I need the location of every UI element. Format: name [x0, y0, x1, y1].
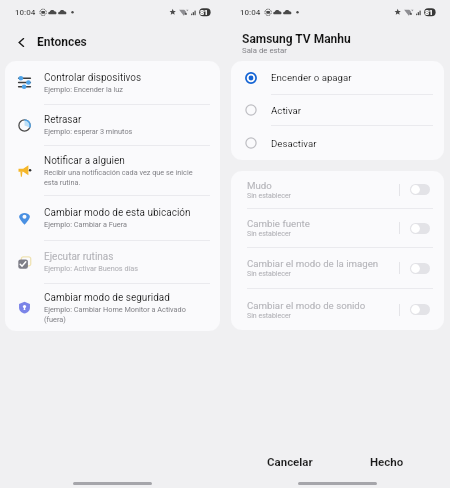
button[interactable]: Mudo: [410, 184, 430, 195]
staticText: Ejemplo: Cambiar Home Monitor a Activado…: [44, 305, 194, 323]
staticText: Samsung TV Manhu: [242, 32, 351, 46]
button[interactable]: Cancelar: [250, 448, 329, 474]
staticText: Entonces: [37, 35, 87, 49]
staticText: Sala de estar: [242, 46, 287, 55]
button[interactable]: Mudo: [231, 171, 444, 208]
staticText: Notificar a alguien: [44, 155, 125, 167]
button[interactable]: Ejecutar rutinas: [5, 241, 220, 283]
staticText: Cancelar: [267, 455, 313, 468]
staticText: Activar: [271, 105, 302, 116]
staticText: 10:04: [240, 8, 261, 17]
button[interactable]: Cambiar modo de esta ubicación: [5, 196, 220, 240]
staticText: Cambie fuente: [247, 218, 310, 229]
staticText: Cambiar el modo de la imagen: [247, 258, 379, 269]
staticText: Ejemplo: esperar 3 minutos: [44, 127, 133, 136]
button[interactable]: Hecho: [347, 448, 426, 474]
button[interactable]: Cambie fuente: [231, 209, 444, 247]
button[interactable]: Cambiar el modo de la imagen: [231, 248, 444, 288]
staticText: Ejemplo: Activar Buenos días: [44, 264, 139, 273]
staticText: Ejemplo: Encender la luz: [44, 85, 123, 94]
staticText: Encender o apagar: [271, 72, 352, 83]
staticText: Cambiar modo de seguridad: [44, 292, 170, 304]
button[interactable]: Notificar a alguien: [5, 146, 220, 195]
staticText: Retrasar: [44, 114, 82, 126]
staticText: Desactivar: [271, 138, 317, 149]
staticText: Mudo: [247, 180, 272, 191]
button[interactable]: Desactivar: [231, 126, 444, 160]
button[interactable]: Encender o apagar: [231, 61, 444, 94]
staticText: Controlar dispositivos: [44, 72, 142, 84]
staticText: 10:04: [15, 8, 36, 17]
staticText: Cambiar modo de esta ubicación: [44, 207, 191, 219]
button[interactable]: Controlar dispositivos: [5, 61, 220, 104]
button[interactable]: Cambiar el modo de sonido: [231, 289, 444, 330]
button[interactable]: Activar: [231, 95, 444, 125]
button[interactable]: Cambie fuente: [410, 223, 430, 234]
staticText: Ejecutar rutinas: [44, 251, 114, 263]
button[interactable]: Retrasar: [5, 105, 220, 145]
staticText: Sin establecer: [247, 270, 291, 278]
staticText: Sin establecer: [247, 192, 291, 200]
staticText: Recibir una notificación cada vez que se…: [44, 168, 194, 186]
staticText: Sin establecer: [247, 230, 291, 238]
button[interactable]: Cambiar el modo de sonido: [410, 304, 430, 315]
button[interactable]: Cambiar el modo de la imagen: [410, 263, 430, 274]
staticText: Hecho: [370, 455, 404, 468]
button[interactable]: Back: [10, 31, 32, 53]
staticText: Cambiar el modo de sonido: [247, 300, 366, 311]
staticText: Sin establecer: [247, 312, 291, 320]
button[interactable]: Cambiar modo de seguridad: [5, 284, 220, 331]
staticText: Ejemplo: Cambiar a Fuera: [44, 220, 127, 229]
staticText: 81: [200, 8, 209, 16]
staticText: 81: [425, 8, 434, 16]
